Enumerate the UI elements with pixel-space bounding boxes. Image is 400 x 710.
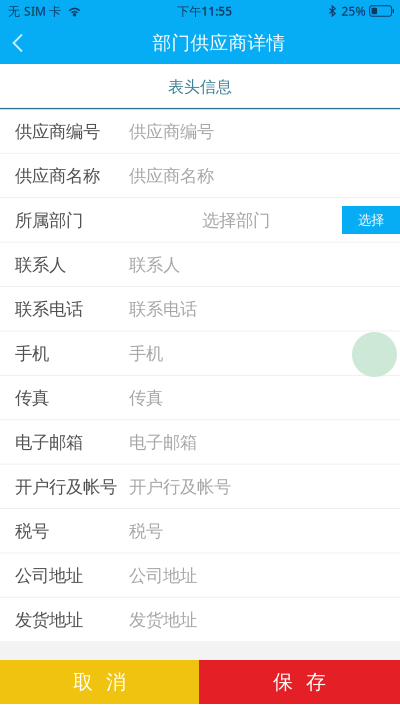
staticText: 所属部门 [15,210,83,231]
button[interactable]: 传真 [0,376,400,420]
button[interactable]: 税号 [0,509,400,553]
staticText: 传真 [129,387,163,409]
staticText: 公司地址 [129,565,197,586]
staticText: 25% [342,3,366,19]
staticText: 发货地址 [129,609,197,631]
staticText: 供应商名称 [15,165,100,187]
staticText: 表头信息 [168,77,232,97]
button[interactable]: 选择 [342,206,400,234]
button[interactable]: 返回 [0,23,38,62]
staticText: 手机 [129,343,163,364]
staticText: 公司地址 [15,565,83,586]
staticText: 电子邮箱 [15,432,83,453]
button[interactable]: 公司地址 [0,553,400,598]
staticText: 联系电话 [129,299,197,320]
staticText: 开户行及帐号 [129,476,231,498]
button[interactable]: 表头信息 [0,64,400,109]
staticText: 选择 [358,212,384,228]
staticText: 供应商编号 [15,121,100,142]
staticText: 联系人 [15,254,66,276]
button[interactable]: 所属部门 [0,198,400,243]
staticText: 保 [273,670,293,694]
staticText: 供应商编号 [129,121,214,142]
staticText: 手机 [15,343,49,364]
staticText: 消 [106,670,126,694]
staticText: 下午11:55 [177,3,232,19]
button[interactable]: 开户行及帐号 [0,465,400,509]
staticText: 发货地址 [15,609,83,631]
button[interactable]: 联系人 [0,243,400,287]
button[interactable]: 供应商名称 [0,154,400,198]
button[interactable]: 保 [199,660,400,704]
button[interactable]: 手机 [0,331,400,376]
button[interactable]: 取 [0,660,199,704]
staticText: 联系人 [129,254,180,276]
staticText: 选择部门 [202,210,270,231]
staticText: 供应商名称 [129,165,214,187]
button[interactable]: 发货地址 [0,598,400,642]
staticText: 部门供应商详情 [152,31,285,54]
staticText: 开户行及帐号 [15,476,117,498]
staticText: 税号 [129,521,163,542]
button[interactable]: 联系电话 [0,287,400,331]
button[interactable]: 供应商编号 [0,109,400,154]
staticText: 税号 [15,521,49,542]
staticText: 无 SIM 卡 [8,3,61,19]
staticText: 传真 [15,387,49,409]
staticText: 联系电话 [15,299,83,320]
staticText: 取 [73,670,93,694]
staticText: 电子邮箱 [129,432,197,453]
button[interactable]: 电子邮箱 [0,420,400,465]
staticText: 存 [306,670,326,694]
